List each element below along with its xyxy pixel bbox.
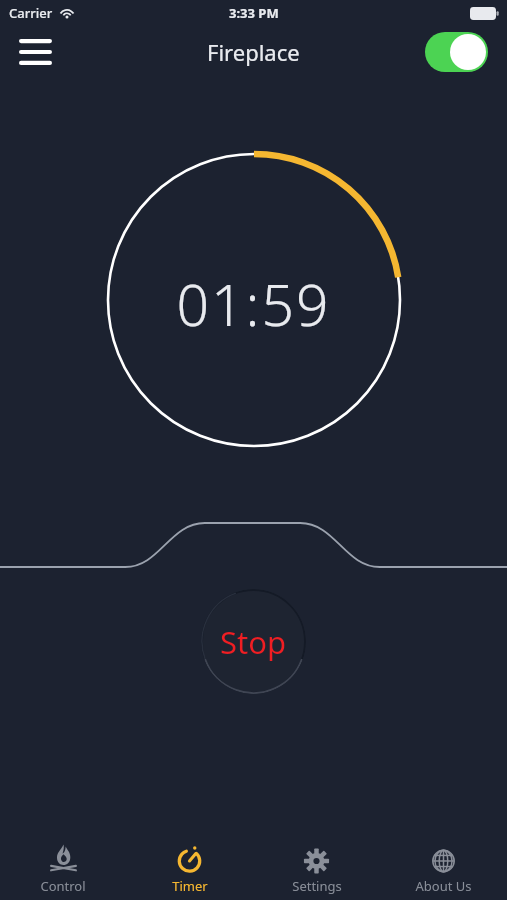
button[interactable]: Settings: [253, 832, 380, 900]
staticText: Fireplace: [207, 37, 300, 67]
button[interactable]: About Us: [380, 832, 507, 900]
staticText: Carrier: [9, 4, 53, 22]
button[interactable]: Power toggle: [425, 32, 488, 72]
staticText: About Us: [415, 877, 472, 895]
button[interactable]: Timer: [126, 832, 253, 900]
staticText: 01:59: [176, 265, 331, 343]
button[interactable]: Stop: [201, 589, 306, 694]
staticText: Control: [40, 877, 86, 895]
staticText: 3:33 PM: [229, 4, 279, 22]
staticText: Settings: [292, 877, 342, 895]
button[interactable]: Menu: [12, 29, 58, 75]
button[interactable]: Control: [0, 832, 126, 900]
staticText: Timer: [172, 877, 208, 895]
staticText: Stop: [220, 621, 287, 663]
